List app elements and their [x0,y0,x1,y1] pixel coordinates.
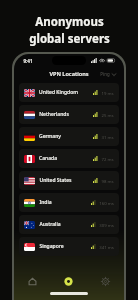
staticText: 31 ms [101,134,114,140]
staticText: Australia [39,221,61,228]
staticText: United Kingdom [39,89,78,96]
staticText: India [39,199,52,206]
staticText: Germany [39,133,61,140]
staticText: 19 ms [101,90,114,96]
staticText: VPN Locations [49,70,89,78]
staticText: global servers [29,31,110,47]
staticText: 309 ms [99,222,114,228]
button[interactable]: Singapore [19,237,119,256]
staticText: 341 ms [99,244,114,250]
staticText: Netherlands [39,111,69,118]
staticText: 25 ms [101,112,114,118]
button[interactable]: United Kingdom [19,83,119,102]
staticText: Canada [39,155,57,162]
staticText: Anonymous [35,14,104,30]
button[interactable]: Ping [99,70,117,78]
staticText: Singapore [39,243,64,250]
button[interactable]: Australia [19,215,119,234]
button[interactable]: Germany [19,127,119,146]
button[interactable]: United States [19,171,119,190]
staticText: 160 ms [99,200,114,206]
staticText: 9:41 [23,58,33,64]
staticText: 72 ms [101,156,114,162]
button[interactable]: India [19,193,119,212]
staticText: Ping [100,71,110,77]
staticText: 98 ms [101,178,114,184]
button[interactable]: Connect [50,271,87,291]
button[interactable]: Netherlands [19,105,119,124]
button[interactable]: Settings [87,271,124,291]
staticText: United States [39,177,72,184]
button[interactable]: Canada [19,149,119,168]
button[interactable]: Home [14,271,50,291]
